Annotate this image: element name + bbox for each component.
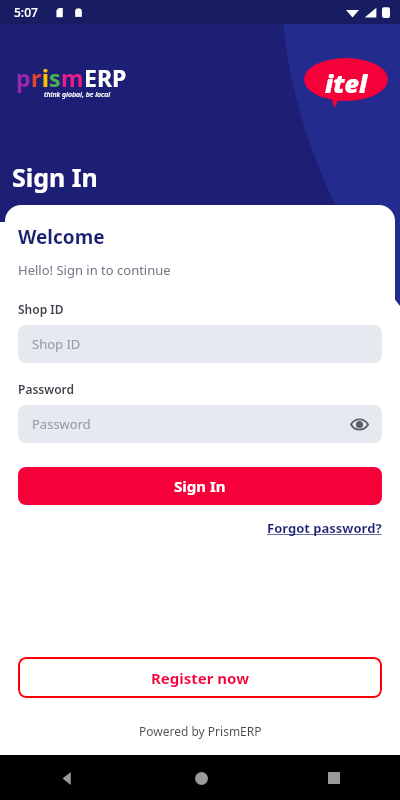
button[interactable]: Back — [50, 761, 84, 795]
staticText: Sign In — [174, 476, 226, 496]
button[interactable]: Password — [18, 405, 382, 443]
button[interactable]: Register now — [18, 657, 382, 698]
staticText: Hello! Sign in to continue — [18, 261, 171, 279]
staticText: 5:07 — [14, 4, 38, 20]
staticText: Password — [32, 415, 91, 433]
button[interactable]: Shop ID — [18, 325, 382, 363]
staticText: p — [16, 62, 31, 93]
staticText: Welcome — [18, 224, 105, 250]
button[interactable]: Show password — [346, 411, 372, 437]
button[interactable]: Home — [184, 761, 218, 795]
staticText: Powered by PrismERP — [139, 723, 262, 739]
button[interactable]: Forgot password? — [267, 517, 382, 539]
staticText: Password — [18, 381, 75, 397]
staticText: Shop ID — [18, 301, 64, 317]
staticText: i — [42, 62, 49, 93]
staticText: r — [31, 62, 42, 93]
staticText: s — [49, 62, 61, 93]
staticText: Register now — [151, 668, 250, 688]
staticText: itel — [325, 66, 368, 100]
staticText: think global, be local — [44, 90, 111, 100]
staticText: ERP — [84, 62, 127, 93]
staticText: Forgot password? — [267, 519, 382, 537]
staticText: Sign In — [12, 160, 98, 194]
staticText: Shop ID — [32, 335, 81, 353]
staticText: m — [61, 62, 84, 93]
button[interactable]: Sign In — [18, 467, 382, 505]
button[interactable]: Recent apps — [317, 761, 351, 795]
